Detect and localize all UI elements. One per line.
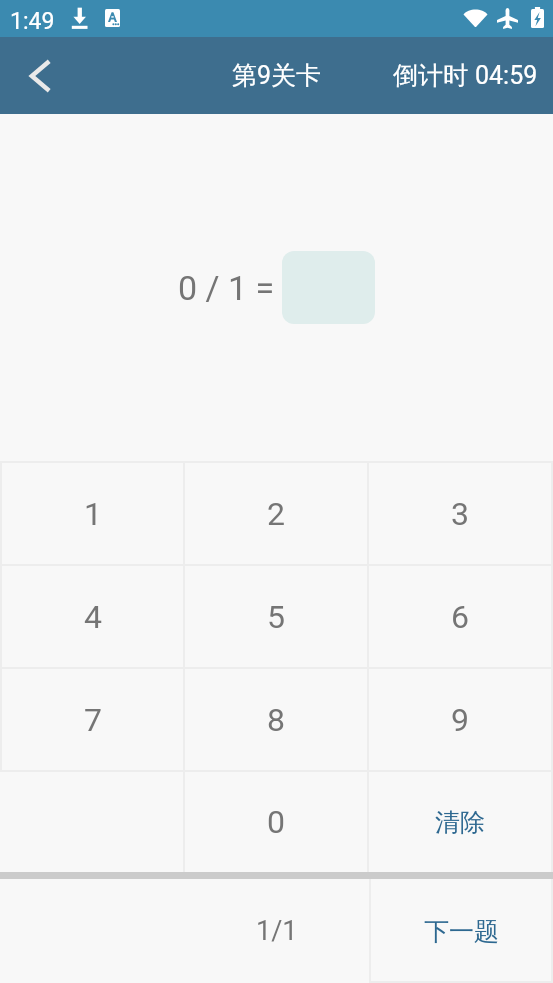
staticText: 0 / 1 = <box>178 268 275 308</box>
staticText: 倒计时 <box>393 60 468 91</box>
button[interactable]: 下一题 <box>371 879 551 983</box>
staticText: 1 <box>84 495 102 533</box>
staticText: 1:49 <box>10 8 55 35</box>
button[interactable]: 8 <box>185 669 367 770</box>
button[interactable]: 0 <box>185 772 367 872</box>
button[interactable]: Back <box>9 45 71 107</box>
staticText: 7 <box>84 701 102 739</box>
staticText: 下一题 <box>424 916 499 947</box>
staticText: 1/1 <box>256 915 298 947</box>
button[interactable]: 3 <box>369 463 551 564</box>
staticText: 清除 <box>435 807 485 838</box>
staticText: 6 <box>451 598 469 636</box>
button[interactable]: 1 <box>2 463 183 564</box>
staticText: 0 <box>267 803 285 841</box>
staticText: 9 <box>451 701 469 739</box>
staticText: 4 <box>84 598 102 636</box>
staticText: 2 <box>267 495 285 533</box>
staticText: 8 <box>267 701 285 739</box>
staticText: 第9关卡 <box>232 60 322 91</box>
button[interactable]: 1/1 <box>185 879 369 983</box>
staticText: 3 <box>451 495 469 533</box>
staticText: 04:59 <box>475 61 538 90</box>
button[interactable]: 5 <box>185 566 367 667</box>
button[interactable]: 2 <box>185 463 367 564</box>
button[interactable]: 清除 <box>369 772 551 872</box>
button[interactable]: 4 <box>2 566 183 667</box>
button[interactable]: 6 <box>369 566 551 667</box>
staticText: 5 <box>267 598 285 636</box>
button[interactable]: 7 <box>2 669 183 770</box>
button[interactable]: 9 <box>369 669 551 770</box>
